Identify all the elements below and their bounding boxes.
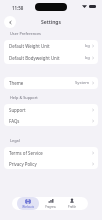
button[interactable]: Default Weight Unit — [4, 40, 98, 52]
button[interactable]: Terms of Service — [4, 147, 98, 158]
staticText: Legal — [10, 138, 20, 143]
button[interactable]: Support — [4, 104, 98, 115]
staticText: Settings — [41, 19, 61, 26]
staticText: Privacy Policy — [9, 161, 37, 167]
button[interactable]: Progress — [39, 197, 61, 210]
staticText: Default Weight Unit — [9, 43, 50, 49]
button[interactable]: Back — [4, 16, 16, 28]
staticText: Profile — [68, 205, 76, 209]
button[interactable]: Theme — [4, 77, 98, 89]
staticText: kg — [85, 43, 90, 49]
button[interactable]: Privacy Policy — [4, 158, 98, 169]
staticText: FAQs — [9, 118, 20, 124]
button[interactable]: Profile — [61, 197, 83, 210]
button[interactable]: Default Bodyweight Unit — [4, 52, 98, 64]
staticText: Support — [9, 107, 26, 113]
staticText: Theme — [9, 80, 24, 86]
staticText: kg — [85, 55, 90, 61]
button[interactable]: Workouts — [17, 197, 39, 210]
staticText: Default Bodyweight Unit — [9, 55, 60, 61]
staticText: Progress — [45, 205, 56, 209]
staticText: Workouts — [22, 205, 34, 209]
button[interactable]: FAQs — [4, 115, 98, 126]
staticText: User Preferences — [10, 31, 41, 36]
staticText: 11:58 — [12, 5, 24, 11]
staticText: Help & Support — [10, 95, 38, 100]
staticText: System — [75, 80, 90, 86]
staticText: Terms of Service — [9, 150, 43, 156]
